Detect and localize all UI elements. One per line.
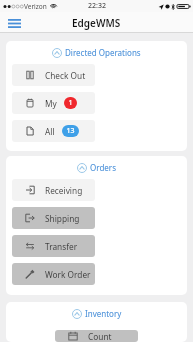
staticText: Orders <box>90 162 116 173</box>
staticText: Receiving <box>45 185 83 196</box>
button[interactable]: Work Order <box>12 263 95 285</box>
staticText: Transfer <box>45 241 78 252</box>
staticText: 22:32 <box>88 1 106 11</box>
button[interactable]: Count <box>55 330 138 342</box>
staticText: 13 <box>66 126 75 136</box>
button[interactable]: Menu <box>4 13 24 33</box>
staticText: 1 <box>68 98 73 108</box>
button[interactable]: Check Out <box>12 64 95 86</box>
staticText: Work Order <box>45 269 91 280</box>
staticText: Verizon <box>24 2 47 11</box>
staticText: All <box>45 126 55 137</box>
button[interactable]: Shipping <box>12 207 95 229</box>
staticText: Check Out <box>45 70 86 81</box>
staticText: Shipping <box>45 213 80 224</box>
staticText: EdgeWMS <box>72 16 121 30</box>
staticText: Count <box>88 331 112 342</box>
staticText: Directed Operations <box>65 47 141 58</box>
staticText: Inventory <box>85 308 122 319</box>
button[interactable]: All <box>12 120 95 142</box>
staticText: My <box>45 98 57 109</box>
button[interactable]: Transfer <box>12 235 95 257</box>
button[interactable]: My <box>12 92 95 114</box>
button[interactable]: Receiving <box>12 179 95 201</box>
